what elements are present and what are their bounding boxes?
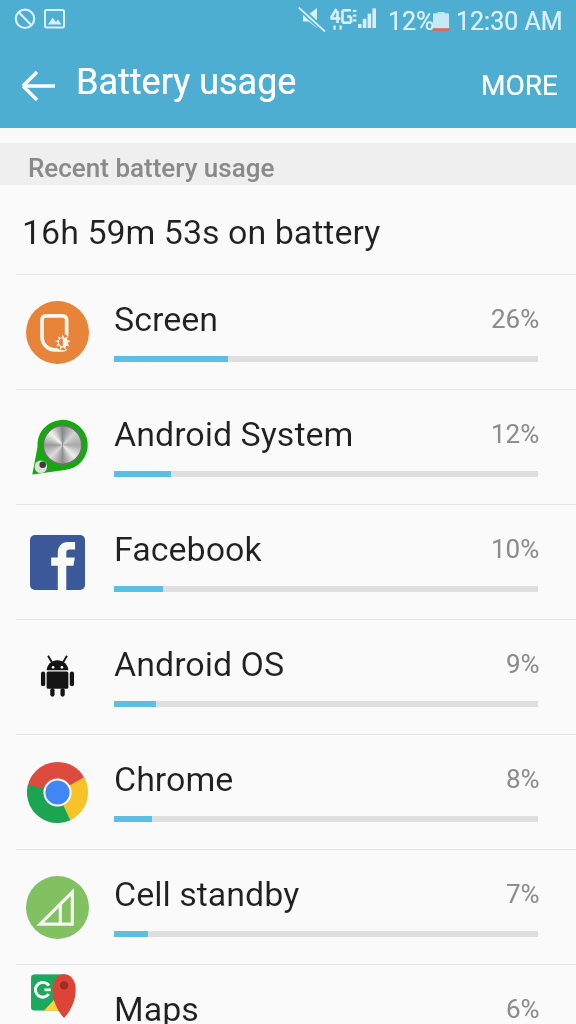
staticText: 10% (491, 534, 540, 564)
button[interactable]: Android System (0, 390, 576, 504)
button[interactable]: Screen (0, 275, 576, 389)
button[interactable]: Navigate up (11, 58, 67, 114)
staticText: Cell standby (114, 874, 300, 914)
button[interactable]: Android OS (0, 620, 576, 734)
button[interactable]: Facebook (0, 505, 576, 619)
staticText: 8% (506, 764, 540, 794)
staticText: Facebook (114, 529, 262, 569)
staticText: MORE (481, 69, 558, 102)
staticText: Android System (114, 414, 354, 454)
staticText: Recent battery usage (28, 153, 275, 183)
staticText: 12% (491, 419, 540, 449)
staticText: 26% (491, 304, 540, 334)
staticText: Screen (114, 299, 219, 339)
staticText: 6% (506, 994, 540, 1024)
button[interactable]: MORE (459, 56, 576, 117)
staticText: Maps (114, 989, 199, 1024)
staticText: 7% (506, 879, 540, 909)
staticText: Chrome (114, 759, 234, 799)
staticText: 12:30 AM (456, 7, 563, 36)
staticText: 16h 59m 53s on battery (22, 212, 381, 252)
button[interactable]: Chrome (0, 735, 576, 849)
button[interactable]: Maps (0, 965, 576, 1024)
staticText: 9% (506, 649, 540, 679)
staticText: Android OS (114, 644, 285, 684)
button[interactable]: Cell standby (0, 850, 576, 964)
staticText: Battery usage (76, 61, 297, 103)
staticText: 12% (388, 7, 435, 36)
